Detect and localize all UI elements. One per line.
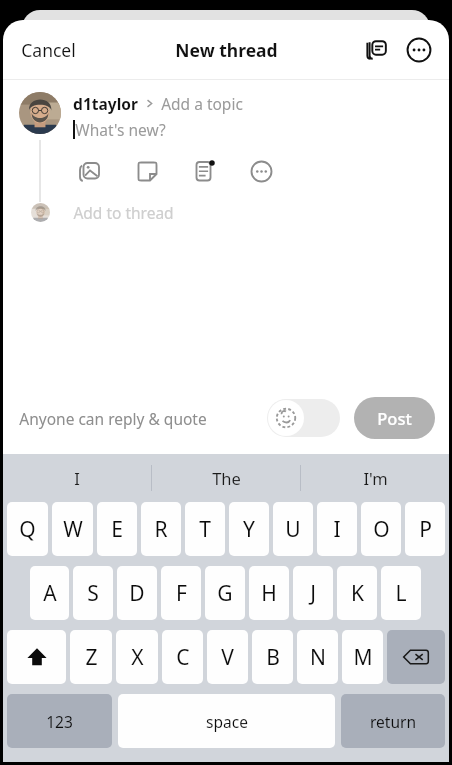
button[interactable]: I <box>317 502 357 556</box>
button[interactable]: return <box>341 694 445 748</box>
button[interactable]: Add to thread <box>19 202 449 233</box>
button[interactable]: W <box>52 502 93 556</box>
button[interactable]: T <box>185 502 225 556</box>
button[interactable]: X <box>116 630 158 684</box>
button[interactable]: R <box>141 502 181 556</box>
staticText: D <box>129 579 145 608</box>
staticText: A <box>43 579 57 608</box>
staticText: S <box>87 579 99 608</box>
staticText: 123 <box>46 711 73 732</box>
button[interactable]: K <box>337 566 377 620</box>
staticText: Z <box>85 643 98 672</box>
staticText: U <box>285 515 301 544</box>
button[interactable]: I <box>3 454 151 502</box>
staticText: V <box>221 643 234 672</box>
button[interactable]: Shift <box>7 630 66 684</box>
staticText: Add a topic <box>161 93 243 114</box>
staticText: J <box>310 579 316 608</box>
button[interactable]: M <box>342 630 383 684</box>
button[interactable]: Cancel <box>9 30 88 70</box>
button[interactable]: Toggle reactions <box>267 399 340 437</box>
button[interactable]: S <box>73 566 113 620</box>
staticText: C <box>176 643 190 672</box>
button[interactable]: U <box>273 502 313 556</box>
staticText: X <box>131 643 144 672</box>
button[interactable]: Anyone can reply & quote <box>19 408 207 429</box>
button[interactable]: More options <box>401 32 437 68</box>
button[interactable]: H <box>249 566 289 620</box>
button[interactable]: J <box>293 566 333 620</box>
button[interactable]: A <box>30 566 69 620</box>
button[interactable]: 123 <box>7 694 112 748</box>
button[interactable]: Q <box>7 502 48 556</box>
staticText: Post <box>377 407 412 429</box>
staticText: K <box>351 579 364 608</box>
button[interactable]: Add poll <box>187 154 221 188</box>
staticText: O <box>373 515 390 544</box>
staticText: H <box>261 579 277 608</box>
staticText: Cancel <box>21 38 76 62</box>
button[interactable]: The <box>152 454 300 502</box>
button[interactable]: Backspace <box>387 630 445 684</box>
button[interactable]: Z <box>70 630 112 684</box>
button[interactable]: N <box>297 630 338 684</box>
staticText: The <box>212 467 241 489</box>
button[interactable]: More attachments <box>244 154 278 188</box>
button[interactable]: Add a topic <box>161 93 243 114</box>
staticText: d1taylor <box>73 93 138 114</box>
staticText: Y <box>243 515 255 544</box>
staticText: E <box>111 515 123 544</box>
staticText: B <box>266 643 280 672</box>
staticText: P <box>419 515 432 544</box>
button[interactable]: B <box>252 630 293 684</box>
staticText: Anyone can reply & quote <box>19 408 207 429</box>
button[interactable]: Post <box>354 397 435 439</box>
button[interactable]: I'm <box>301 454 449 502</box>
staticText: T <box>199 515 211 544</box>
staticText: return <box>370 711 416 732</box>
staticText: I <box>333 515 341 544</box>
button[interactable]: E <box>97 502 137 556</box>
staticText: F <box>176 579 187 608</box>
staticText: W <box>63 515 83 544</box>
staticText: Q <box>19 515 36 544</box>
button[interactable]: space <box>118 694 335 748</box>
staticText: R <box>154 515 168 544</box>
button[interactable]: C <box>162 630 203 684</box>
staticText: space <box>206 711 248 732</box>
button[interactable]: F <box>161 566 201 620</box>
button[interactable]: Add GIF <box>130 154 164 188</box>
button[interactable]: Drafts <box>359 32 395 68</box>
staticText: I'm <box>363 467 388 489</box>
staticText: New thread <box>175 38 278 62</box>
staticText: Add to thread <box>73 202 174 223</box>
button[interactable]: Add photo <box>73 154 107 188</box>
button[interactable]: O <box>361 502 401 556</box>
staticText: G <box>217 579 233 608</box>
button[interactable]: P <box>405 502 445 556</box>
button[interactable]: L <box>381 566 421 620</box>
button[interactable]: G <box>205 566 245 620</box>
staticText: What's new? <box>75 119 166 140</box>
staticText: N <box>310 643 326 672</box>
button[interactable]: Y <box>229 502 269 556</box>
staticText: M <box>353 643 373 672</box>
staticText: I <box>74 467 80 489</box>
button[interactable]: V <box>207 630 248 684</box>
button[interactable]: D <box>117 566 157 620</box>
staticText: L <box>395 579 407 608</box>
